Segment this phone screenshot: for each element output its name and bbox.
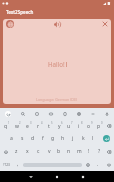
staticText: , <box>17 161 19 168</box>
button[interactable]: t <box>44 119 54 132</box>
staticText: m <box>77 148 82 155</box>
staticText: g <box>51 135 55 142</box>
staticText: s <box>21 135 24 142</box>
button[interactable]: Close <box>100 19 109 28</box>
staticText: ? <box>98 148 101 155</box>
staticText: q <box>4 123 8 130</box>
staticText: a <box>10 135 13 142</box>
button[interactable]: p <box>94 119 104 132</box>
button[interactable]: b <box>54 145 64 158</box>
button[interactable]: Enter <box>98 132 114 145</box>
button[interactable] <box>23 158 82 171</box>
staticText: e <box>26 123 29 130</box>
staticText: 1 <box>8 121 10 125</box>
button[interactable]: a <box>6 132 17 145</box>
button[interactable]: Clipboard <box>58 108 72 119</box>
staticText: . <box>97 161 99 168</box>
button[interactable]: Search <box>15 108 30 119</box>
staticText: 2 <box>19 121 21 125</box>
button[interactable]: Emoji <box>83 158 93 171</box>
staticText: w <box>15 123 19 130</box>
staticText: 5 <box>51 121 53 125</box>
button[interactable]: j <box>68 132 78 145</box>
button[interactable]: . <box>93 158 103 171</box>
staticText: 4 <box>41 121 43 125</box>
staticText: 6 <box>61 121 63 125</box>
staticText: p <box>97 123 101 130</box>
button[interactable]: x <box>22 145 33 158</box>
button[interactable]: r <box>33 119 44 132</box>
button[interactable]: c <box>33 145 44 158</box>
staticText: 0 <box>101 121 103 125</box>
staticText: b <box>57 148 61 155</box>
staticText: v <box>48 148 51 155</box>
staticText: t <box>48 123 50 130</box>
staticText: Text2Speech <box>6 9 34 15</box>
button[interactable]: f <box>38 132 48 145</box>
button[interactable]: s <box>17 132 28 145</box>
staticText: u <box>67 123 71 130</box>
staticText: 8 <box>81 121 83 125</box>
staticText: z <box>15 148 18 155</box>
button[interactable]: Google <box>0 108 15 119</box>
staticText: r <box>37 123 40 130</box>
button[interactable]: g <box>48 132 58 145</box>
button[interactable]: , <box>13 158 22 171</box>
staticText: f <box>42 135 44 142</box>
button[interactable]: z <box>11 145 22 158</box>
staticText: ?123 <box>3 163 10 167</box>
button[interactable]: Backspace <box>104 119 114 132</box>
staticText: j <box>72 135 74 142</box>
button[interactable]: u <box>64 119 74 132</box>
staticText: n <box>67 148 71 155</box>
button[interactable]: v <box>44 145 54 158</box>
button[interactable]: ! <box>84 145 94 158</box>
button[interactable]: Backspace <box>104 145 114 158</box>
button[interactable]: y <box>54 119 64 132</box>
button[interactable]: Translate language <box>6 20 14 28</box>
button[interactable]: m <box>74 145 84 158</box>
button[interactable]: Stickers <box>30 108 44 119</box>
staticText: Language: German (DE) <box>36 97 78 102</box>
button[interactable]: Voice input <box>100 108 114 119</box>
button[interactable]: ? <box>94 145 104 158</box>
button[interactable]: w <box>11 119 22 132</box>
button[interactable]: Back <box>24 171 38 182</box>
staticText: d <box>31 135 35 142</box>
button[interactable]: h <box>58 132 68 145</box>
button[interactable]: Shift <box>0 145 11 158</box>
button[interactable]: i <box>74 119 84 132</box>
staticText: h <box>61 135 65 142</box>
button[interactable]: o <box>84 119 94 132</box>
staticText: y <box>58 123 61 130</box>
button[interactable]: Hide keyboard <box>103 158 114 171</box>
staticText: 7 <box>71 121 73 125</box>
staticText: ! <box>88 148 90 155</box>
staticText: x <box>26 148 29 155</box>
button[interactable]: e <box>22 119 33 132</box>
button[interactable]: Speak <box>52 19 62 29</box>
staticText: 9 <box>91 121 93 125</box>
staticText: i <box>78 123 80 130</box>
staticText: 3 <box>30 121 32 125</box>
staticText: l <box>92 135 94 142</box>
button[interactable]: GIF <box>44 108 58 119</box>
button[interactable]: Settings <box>72 108 86 119</box>
staticText: Hallo! <box>48 60 65 68</box>
button[interactable]: l <box>88 132 98 145</box>
button[interactable]: Recents <box>76 171 90 182</box>
staticText: o <box>87 123 91 130</box>
button[interactable]: k <box>78 132 88 145</box>
button[interactable]: d <box>28 132 38 145</box>
button[interactable]: Home <box>50 171 64 182</box>
button[interactable]: Translate <box>86 108 100 119</box>
button[interactable]: n <box>64 145 74 158</box>
staticText: c <box>37 148 40 155</box>
staticText: k <box>82 135 85 142</box>
button[interactable]: q <box>0 119 11 132</box>
button[interactable]: ?123 <box>0 158 13 171</box>
